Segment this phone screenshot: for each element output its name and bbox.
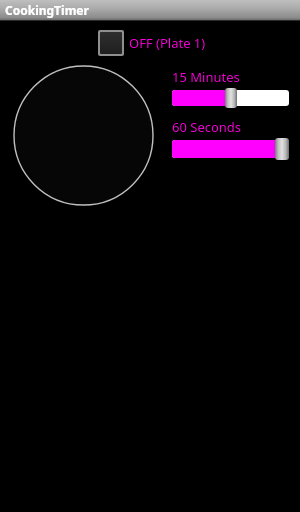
button[interactable]: Toggle plate 1 <box>98 30 124 56</box>
staticText: 60 Seconds <box>172 118 242 136</box>
staticText: OFF (Plate 1) <box>129 34 206 52</box>
button[interactable]: Slider <box>172 88 289 108</box>
staticText: 15 Minutes <box>172 68 240 86</box>
staticText: CookingTimer <box>5 2 89 18</box>
button[interactable]: OFF (Plate 1) <box>129 34 206 52</box>
button[interactable]: Hot plate <box>12 65 155 206</box>
button[interactable]: Slider <box>172 138 289 160</box>
